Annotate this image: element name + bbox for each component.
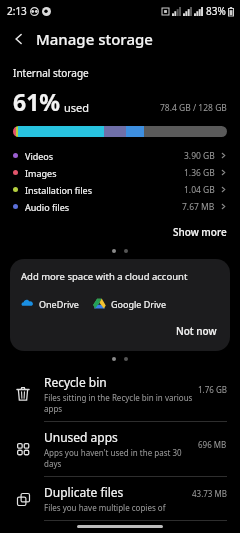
staticText: used [64, 100, 90, 115]
button[interactable]: Unused apps [0, 422, 240, 476]
button[interactable]: Recycle bin [0, 367, 240, 421]
staticText: Files sitting in the Recycle bin in vari… [44, 392, 198, 414]
staticText: Unused apps [44, 429, 118, 445]
staticText: 3.90 GB [184, 150, 215, 162]
staticText: Manage storage [36, 29, 153, 49]
staticText: 1.04 GB [184, 184, 215, 196]
staticText: 696 MB [198, 439, 227, 450]
staticText: Recycle bin [44, 374, 107, 390]
staticText: Apps you haven't used in the past 30 day… [44, 447, 198, 469]
staticText: 7.67 MB [182, 201, 215, 213]
button[interactable]: Installation files [0, 181, 240, 198]
staticText: Not now [176, 324, 217, 338]
button[interactable]: Audio files [0, 198, 240, 215]
button[interactable]: Back [8, 28, 30, 50]
button[interactable]: Show more [160, 221, 240, 243]
staticText: Google Drive [111, 298, 166, 310]
staticText: Installation files [25, 184, 92, 196]
staticText: Images [25, 167, 57, 179]
staticText: Videos [25, 150, 54, 162]
staticText: Show more [173, 225, 227, 239]
staticText: 2:13 [7, 4, 27, 18]
staticText: Add more space with a cloud account [21, 270, 188, 283]
staticText: 43.73 MB [192, 488, 227, 499]
button[interactable]: Back [0, 22, 240, 56]
button[interactable]: Large files [0, 521, 240, 533]
staticText: Audio files [25, 201, 70, 213]
button[interactable]: Videos [0, 147, 240, 164]
staticText: 78.4 GB / 128 GB [160, 102, 227, 114]
staticText: Duplicate files [44, 484, 124, 500]
button[interactable]: Duplicate files [0, 477, 240, 520]
staticText: Files you have multiple copies of [44, 502, 166, 513]
staticText: Internal storage [13, 66, 89, 80]
button[interactable]: Images [0, 164, 240, 181]
staticText: 83% [206, 4, 226, 18]
button[interactable]: Not now [174, 322, 219, 340]
staticText: 61% [13, 86, 61, 117]
staticText: OneDrive [39, 298, 79, 310]
button[interactable]: Add more space with a cloud account [10, 259, 230, 351]
staticText: 1.76 GB [198, 384, 227, 395]
staticText: 1.36 GB [184, 167, 215, 179]
